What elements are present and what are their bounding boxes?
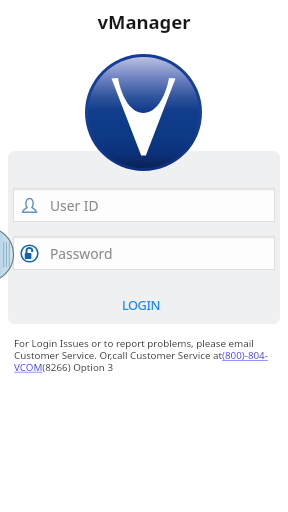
staticText: vManager — [0, 9, 288, 34]
staticText: Password — [50, 244, 113, 263]
staticText: For Login Issues or to report problems, … — [14, 337, 270, 374]
button[interactable]: User ID — [13, 188, 275, 222]
button[interactable]: Password — [13, 236, 275, 270]
staticText: User ID — [50, 196, 99, 215]
button[interactable]: Open navigation drawer — [0, 227, 14, 282]
staticText: LOGIN — [122, 296, 160, 313]
button[interactable]: LOGIN — [5, 290, 277, 318]
